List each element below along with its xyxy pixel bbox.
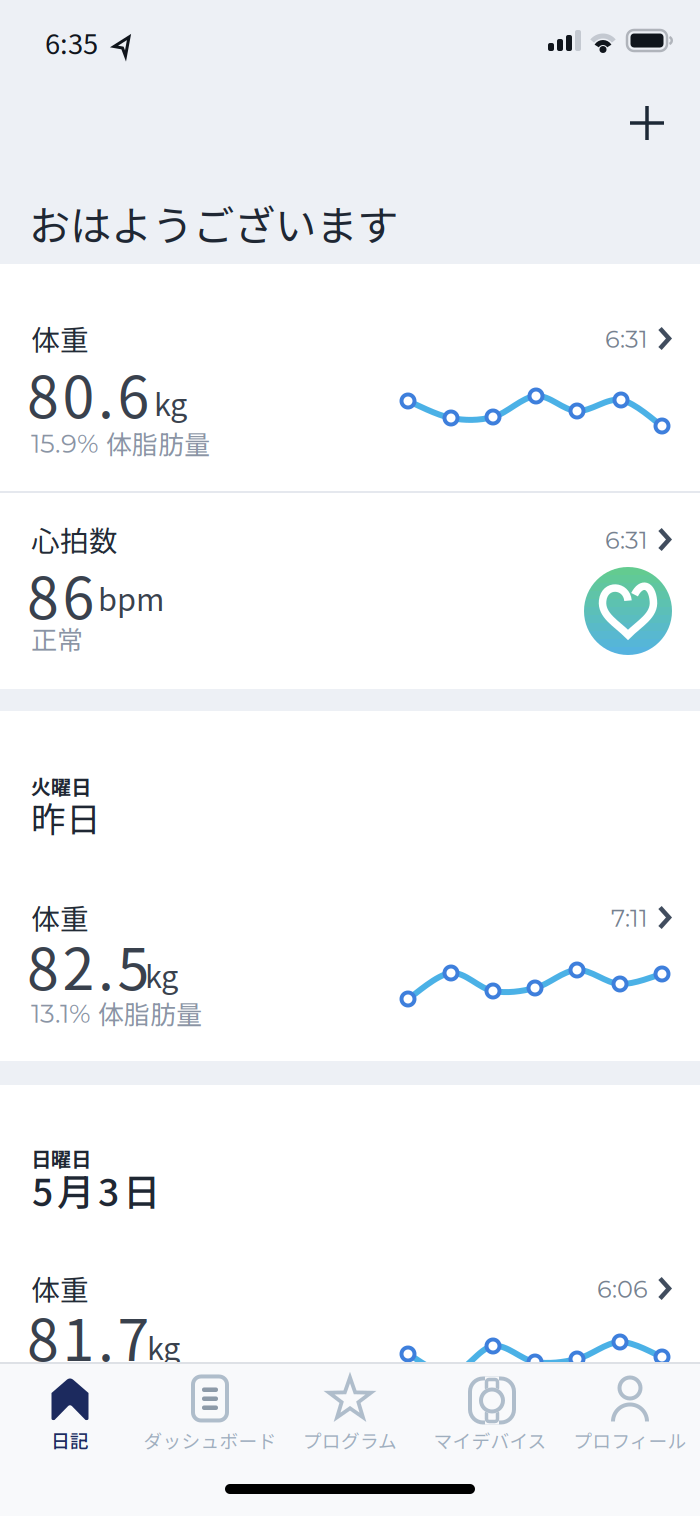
- staticText: ダッシュボード: [143, 1426, 276, 1453]
- staticText: 7:11: [611, 903, 648, 933]
- staticText: kg: [147, 1324, 180, 1369]
- staticText: 6:31: [605, 324, 648, 354]
- staticText: 13.1% 体脂肪量: [31, 994, 202, 1032]
- staticText: 8: [27, 1294, 59, 1377]
- button[interactable]: ダッシュボード: [140, 1370, 280, 1458]
- staticText: 月: [57, 1162, 94, 1217]
- staticText: 6: [117, 351, 149, 434]
- staticText: 体重: [31, 896, 89, 938]
- button[interactable]: マイデバイス: [420, 1370, 560, 1458]
- staticText: 1: [62, 1294, 94, 1377]
- staticText: kg: [145, 952, 178, 997]
- staticText: おはようございます: [29, 193, 398, 253]
- button[interactable]: 日記: [0, 1370, 140, 1458]
- staticText: 日記: [51, 1426, 89, 1453]
- staticText: 心拍数: [31, 518, 118, 560]
- staticText: 日: [123, 1162, 160, 1217]
- button[interactable]: 体重: [0, 880, 700, 1061]
- staticText: kg: [154, 380, 187, 425]
- staticText: .: [98, 1294, 114, 1377]
- staticText: 0: [62, 351, 94, 434]
- staticText: 6:06: [597, 1274, 648, 1304]
- button[interactable]: 追加: [617, 93, 677, 153]
- staticText: 日曜日: [31, 1143, 91, 1172]
- staticText: 15.9% 体脂肪量: [31, 424, 210, 462]
- staticText: 3: [98, 1162, 119, 1217]
- button[interactable]: プログラム: [280, 1370, 420, 1458]
- staticText: プログラム: [303, 1426, 397, 1453]
- staticText: .: [98, 351, 114, 434]
- staticText: 6: [62, 552, 94, 635]
- button[interactable]: 体重: [0, 1250, 700, 1362]
- staticText: 8: [27, 351, 59, 434]
- button[interactable]: 体重: [0, 265, 700, 491]
- staticText: 5: [117, 923, 149, 1006]
- staticText: プロフィール: [573, 1426, 686, 1453]
- staticText: 8: [27, 923, 59, 1006]
- staticText: 6:35: [45, 22, 98, 62]
- staticText: bpm: [98, 575, 164, 620]
- staticText: 体重: [31, 1267, 89, 1309]
- staticText: 火曜日: [31, 771, 91, 800]
- staticText: 5: [32, 1162, 53, 1217]
- button[interactable]: 心拍数: [0, 493, 700, 688]
- staticText: 6:31: [605, 525, 648, 555]
- staticText: 正常: [31, 619, 83, 657]
- staticText: 8: [27, 552, 59, 635]
- button[interactable]: プロフィール: [560, 1370, 700, 1458]
- staticText: 体重: [31, 317, 89, 359]
- staticText: 昨日: [31, 792, 101, 842]
- staticText: 2: [62, 923, 94, 1006]
- staticText: .: [98, 923, 114, 1006]
- staticText: マイデバイス: [433, 1426, 546, 1453]
- staticText: 7: [117, 1294, 149, 1377]
